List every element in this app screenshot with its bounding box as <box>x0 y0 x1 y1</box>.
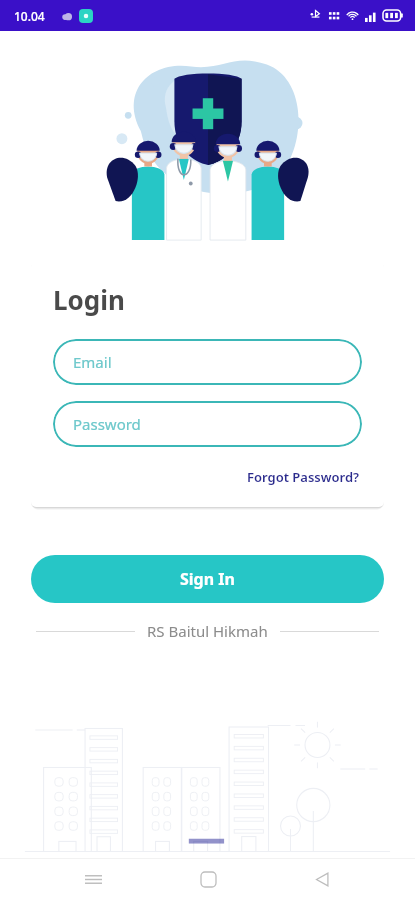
button[interactable]: Home <box>186 858 230 900</box>
staticText: Sign In <box>180 568 235 590</box>
staticText: RS Baitul Hikmah <box>147 621 268 641</box>
button[interactable]: Forgot Password? <box>245 465 362 489</box>
button[interactable]: Email <box>53 339 362 385</box>
button[interactable]: Recents <box>71 858 115 900</box>
staticText: Email <box>73 352 112 372</box>
button[interactable]: Back <box>300 858 344 900</box>
button[interactable]: Password <box>53 401 362 447</box>
staticText: 10.04 <box>14 8 45 24</box>
staticText: Login <box>53 282 125 317</box>
staticText: Forgot Password? <box>247 468 360 486</box>
staticText: Password <box>73 414 141 434</box>
button[interactable]: Sign In <box>31 555 384 603</box>
